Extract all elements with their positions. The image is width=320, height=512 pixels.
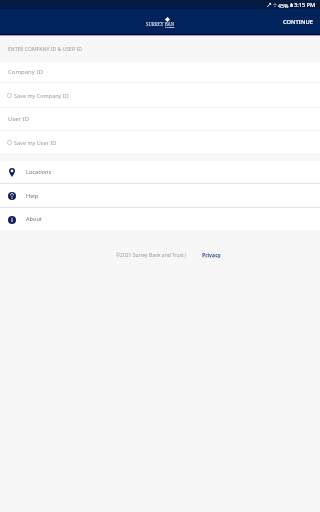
button[interactable]: Company ID — [0, 62, 320, 82]
staticText: 3:15 PM — [294, 1, 316, 9]
button[interactable]: Save my User ID — [0, 131, 320, 153]
staticText: Company ID — [8, 68, 43, 76]
staticText: About — [26, 215, 42, 223]
staticText: & TRUST — [165, 26, 175, 29]
button[interactable]: Help — [0, 184, 320, 207]
staticText: ENTER COMPANY ID & USER ID — [8, 46, 82, 53]
button[interactable]: Privacy — [202, 251, 221, 258]
staticText: 45% — [278, 2, 289, 9]
staticText: CONTINUE — [283, 18, 313, 26]
button[interactable]: Save my Company ID — [0, 83, 320, 107]
staticText: ©2021 Surrey Bank and Trust| — [116, 252, 187, 259]
staticText: SURREY BANK — [146, 21, 174, 27]
button[interactable]: Locations — [0, 161, 320, 183]
staticText: Locations — [26, 168, 52, 176]
staticText: Save my Company ID — [14, 92, 69, 99]
staticText: User ID — [8, 115, 30, 123]
button[interactable]: CONTINUE — [276, 12, 320, 32]
staticText: Privacy — [202, 251, 221, 258]
staticText: Help — [26, 192, 39, 200]
button[interactable]: About — [0, 208, 320, 230]
staticText: Save my User ID — [14, 139, 57, 146]
button[interactable]: User ID — [0, 108, 320, 130]
